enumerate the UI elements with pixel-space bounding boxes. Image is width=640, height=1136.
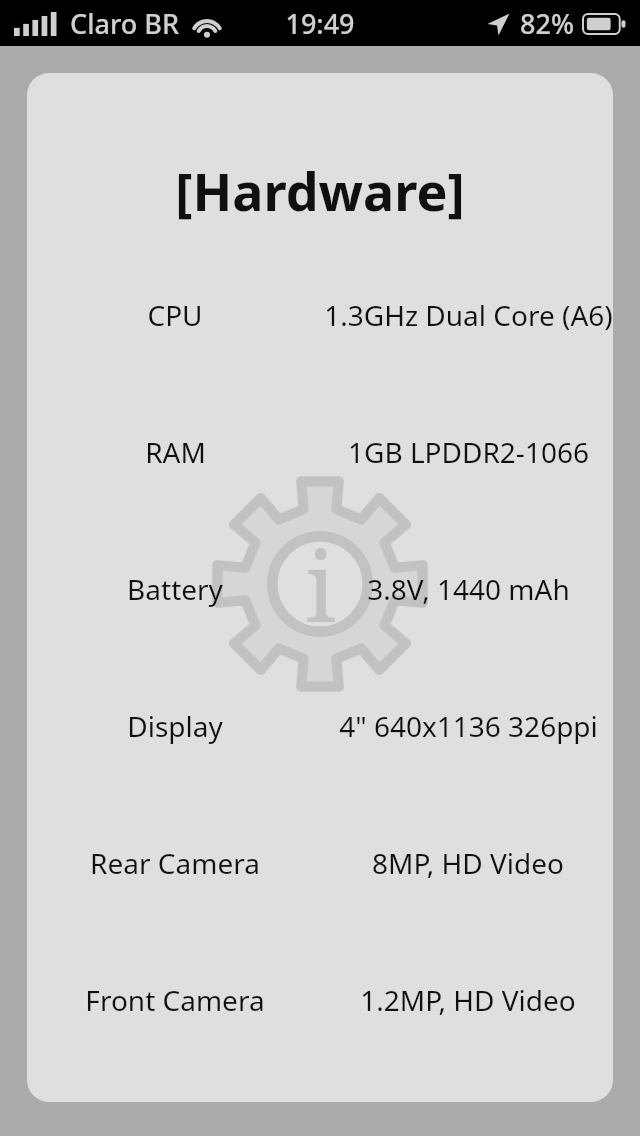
- staticText: Front Camera: [85, 981, 265, 1019]
- button[interactable]: Front Camera: [27, 980, 613, 1020]
- staticText: CPU: [147, 296, 203, 334]
- staticText: 1.2MP, HD Video (720p): [323, 981, 613, 1019]
- staticText: i: [305, 519, 336, 650]
- staticText: Claro BR: [70, 5, 179, 42]
- staticText: 3.8V, 1440 mAh: [367, 570, 570, 608]
- other: Information: [209, 473, 431, 695]
- staticText: [Hardware]: [175, 155, 465, 226]
- staticText: 1.3GHz Dual Core (A6): [324, 296, 613, 334]
- staticText: 4" 640x1136 326ppi: [339, 707, 598, 745]
- staticText: 1GB LPDDR2-1066: [348, 433, 589, 471]
- button[interactable]: RAM: [27, 432, 613, 472]
- staticText: 82%: [520, 5, 574, 42]
- button[interactable]: Rear Camera: [27, 843, 613, 883]
- button[interactable]: Information: [27, 73, 613, 1102]
- button[interactable]: Battery: [27, 569, 613, 609]
- staticText: 19:49: [285, 5, 355, 42]
- staticText: 8MP, HD Video (1080p): [323, 844, 613, 882]
- staticText: Rear Camera: [90, 844, 260, 882]
- button[interactable]: Display: [27, 706, 613, 746]
- staticText: RAM: [145, 433, 206, 471]
- staticText: Battery: [127, 570, 223, 608]
- button[interactable]: CPU: [27, 295, 613, 335]
- staticText: Display: [127, 707, 223, 745]
